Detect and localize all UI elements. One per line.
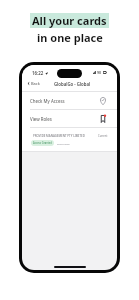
staticText: in one place <box>37 30 103 45</box>
staticText: 29/07/2025 <box>57 142 70 145</box>
staticText: 90 <box>97 70 102 75</box>
other: View Roles <box>99 115 107 123</box>
other: Check My Access <box>99 97 107 105</box>
staticText: PROVIDE MANAGEMENT PTY LIMITED <box>33 134 85 138</box>
staticText: Back <box>31 81 40 86</box>
button[interactable]: Check My Access <box>22 92 117 109</box>
button[interactable]: View Roles <box>22 110 117 127</box>
staticText: View Roles <box>30 116 52 122</box>
staticText: GlobalGo - Global <box>54 81 91 87</box>
staticText: Check My Access <box>30 98 65 104</box>
button[interactable]: Back <box>22 80 44 88</box>
staticText: 16:22 <box>32 70 44 76</box>
staticText: All your cards <box>32 13 107 28</box>
staticText: Current <box>98 134 108 138</box>
staticText: Access Granted <box>33 141 52 145</box>
